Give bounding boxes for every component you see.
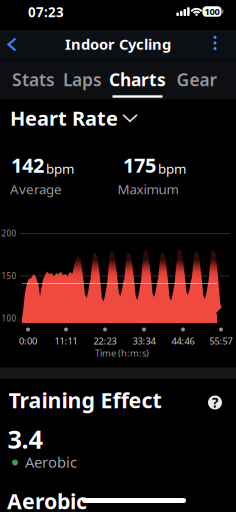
button[interactable]: Laps [57,62,108,97]
staticText: 100 [1,313,16,324]
staticText: 3.4 [7,422,42,456]
staticText: bpm [158,160,186,177]
staticText: Stats [12,68,55,91]
button[interactable]: More options [207,30,222,56]
staticText: Average [10,180,62,198]
staticText: 0:00 [19,335,37,347]
staticText: 175 [123,152,156,178]
staticText: 33:34 [132,335,155,347]
staticText: 200 [1,228,16,239]
staticText: 22:23 [93,335,116,347]
staticText: Aerobic [7,487,87,512]
button[interactable]: Back [0,31,24,57]
button[interactable]: Heart Rate [10,105,138,131]
staticText: 100 [204,5,219,18]
staticText: 142 [11,152,44,178]
staticText: 150 [1,271,16,281]
staticText: 11:11 [54,335,77,347]
button[interactable]: Help [204,390,226,415]
staticText: Indoor Cycling [65,34,171,54]
staticText: Maximum [117,180,178,198]
button[interactable]: Charts [103,62,172,97]
staticText: ? [212,394,218,411]
staticText: Gear [176,68,217,91]
staticText: 07:23 [28,3,64,21]
staticText: Time (h:m:s) [95,347,149,359]
button[interactable]: Stats [6,62,61,97]
staticText: Training Effect [8,386,161,414]
staticText: 55:57 [209,335,232,347]
staticText: Aerobic [25,452,77,472]
staticText: bpm [46,160,74,177]
staticText: 44:46 [171,335,194,347]
button[interactable]: Gear [170,62,223,97]
staticText: Laps [63,68,102,91]
staticText: Charts [109,68,166,91]
staticText: Heart Rate [10,105,118,131]
